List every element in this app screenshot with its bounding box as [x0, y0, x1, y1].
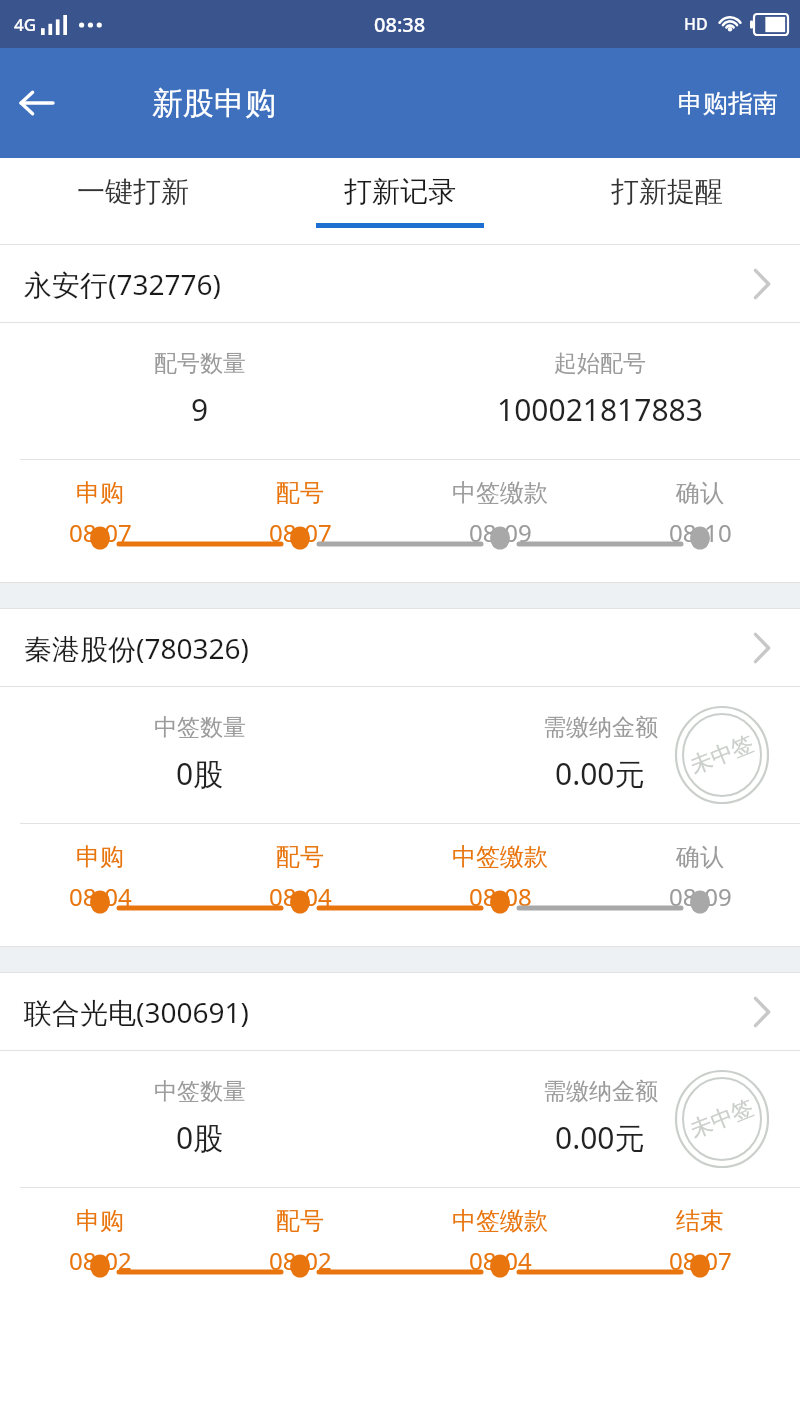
staticText: 08-04 — [269, 880, 332, 913]
staticText: 需缴纳金额 — [543, 1077, 658, 1106]
staticText: 中签数量 — [154, 713, 246, 742]
staticText: 中签数量 — [154, 1077, 246, 1106]
staticText: 配号 — [276, 478, 324, 508]
staticText: 申购 — [76, 478, 124, 508]
button[interactable]: 秦港股份(780326) — [0, 609, 800, 686]
staticText: 中签缴款 — [452, 842, 548, 872]
staticText: 08-02 — [269, 1244, 332, 1277]
staticText: 08-09 — [669, 880, 732, 913]
staticText: 确认 — [676, 478, 724, 508]
staticText: 08-07 — [69, 516, 132, 549]
button[interactable]: 申购指南 — [656, 74, 800, 133]
button[interactable]: 一键打新 — [0, 158, 266, 244]
staticText: 0.00元 — [555, 1117, 645, 1158]
staticText: 确认 — [676, 842, 724, 872]
staticText: HD — [684, 13, 708, 35]
staticText: 中签缴款 — [452, 478, 548, 508]
button[interactable]: 永安行(732776) — [0, 245, 800, 322]
staticText: 一键打新 — [77, 174, 189, 209]
staticText: 永安行(732776) — [24, 265, 221, 303]
staticText: 结束 — [676, 1206, 724, 1236]
staticText: 08-10 — [669, 516, 732, 549]
staticText: 申购指南 — [678, 88, 778, 119]
staticText: 0.00元 — [555, 753, 645, 794]
staticText: 08:38 — [374, 11, 426, 38]
staticText: 08-08 — [469, 880, 532, 913]
staticText: 需缴纳金额 — [543, 713, 658, 742]
staticText: 配号 — [276, 1206, 324, 1236]
staticText: 未中签 — [686, 1094, 758, 1144]
staticText: 联合光电(300691) — [24, 993, 249, 1031]
staticText: 08-02 — [69, 1244, 132, 1277]
staticText: 配号 — [276, 842, 324, 872]
staticText: 08-04 — [469, 1244, 532, 1277]
button[interactable]: Back — [0, 67, 72, 139]
button[interactable]: 打新记录 — [266, 158, 533, 244]
staticText: 4G — [14, 13, 37, 36]
staticText: 申购 — [76, 1206, 124, 1236]
button[interactable]: 联合光电(300691) — [0, 973, 800, 1050]
staticText: 08-04 — [69, 880, 132, 913]
staticText: 9 — [191, 389, 209, 430]
staticText: 08-09 — [469, 516, 532, 549]
staticText: 申购 — [76, 842, 124, 872]
staticText: 秦港股份(780326) — [24, 629, 249, 667]
staticText: 未中签 — [686, 730, 758, 780]
staticText: 配号数量 — [154, 349, 246, 378]
staticText: 中签缴款 — [452, 1206, 548, 1236]
staticText: 起始配号 — [554, 349, 646, 378]
staticText: 100021817883 — [497, 389, 703, 430]
staticText: 打新提醒 — [611, 174, 723, 209]
button[interactable]: 打新提醒 — [533, 158, 800, 244]
staticText: 08-07 — [669, 1244, 732, 1277]
staticText: 08-07 — [269, 516, 332, 549]
staticText: 0股 — [176, 753, 224, 794]
staticText: 新股申购 — [152, 84, 276, 123]
staticText: 0股 — [176, 1117, 224, 1158]
staticText: 打新记录 — [344, 174, 456, 209]
